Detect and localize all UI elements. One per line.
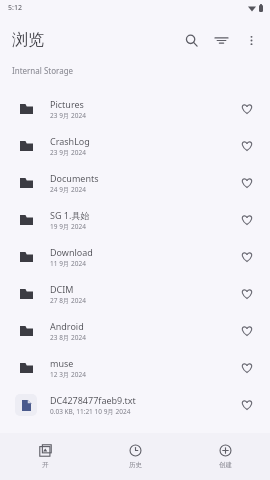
staticText: SG 1.具始 — [50, 209, 90, 221]
button[interactable]: 历史 — [90, 433, 180, 480]
staticText: Internal Storage — [12, 65, 74, 76]
staticText: 27 8月 2024 — [50, 296, 86, 305]
button[interactable]: Favorite — [234, 355, 260, 381]
staticText: 开 — [42, 461, 49, 469]
staticText: Android — [50, 320, 84, 332]
button[interactable]: Android — [0, 312, 270, 349]
button[interactable]: 创建 — [180, 433, 270, 480]
button[interactable]: muse — [0, 349, 270, 386]
button[interactable]: Favorite — [234, 281, 260, 307]
button[interactable]: Favorite — [234, 96, 260, 122]
staticText: 24 9月 2024 — [50, 185, 86, 194]
staticText: 浏览 — [12, 30, 44, 50]
staticText: Documents — [50, 172, 99, 184]
button[interactable]: More options — [236, 25, 266, 55]
button[interactable]: Pictures — [0, 90, 270, 127]
staticText: 23 8月 2024 — [50, 333, 86, 342]
staticText: DC4278477faeb9.txt — [50, 394, 136, 406]
button[interactable]: Download — [0, 238, 270, 275]
staticText: 历史 — [129, 461, 142, 469]
button[interactable]: CrashLog — [0, 127, 270, 164]
staticText: 5:12 — [8, 3, 22, 13]
button[interactable]: SG 1.具始 — [0, 201, 270, 238]
staticText: 11 9月 2024 — [50, 259, 86, 268]
staticText: 23 9月 2024 — [50, 111, 86, 120]
staticText: 19 9月 2024 — [50, 222, 86, 231]
button[interactable]: Favorite — [234, 392, 260, 418]
button[interactable]: DC4278477faeb9.txt — [0, 386, 270, 423]
staticText: 23 9月 2024 — [50, 148, 86, 157]
button[interactable]: Documents — [0, 164, 270, 201]
staticText: 0.03 KB, 11:21 10 9月 2024 — [50, 407, 131, 416]
button[interactable]: Favorite — [234, 318, 260, 344]
staticText: CrashLog — [50, 135, 90, 147]
button[interactable]: Favorite — [234, 207, 260, 233]
button[interactable]: Favorite — [234, 244, 260, 270]
button[interactable]: Search — [176, 25, 206, 55]
button[interactable]: Sort — [206, 25, 236, 55]
staticText: 12 3月 2024 — [50, 370, 86, 379]
staticText: 创建 — [219, 461, 232, 469]
staticText: Pictures — [50, 98, 84, 110]
staticText: DCIM — [50, 283, 74, 295]
button[interactable]: Favorite — [234, 170, 260, 196]
button[interactable]: 开 — [0, 433, 90, 480]
button[interactable]: DCIM — [0, 275, 270, 312]
staticText: muse — [50, 357, 74, 369]
button[interactable]: Favorite — [234, 133, 260, 159]
staticText: Download — [50, 246, 93, 258]
